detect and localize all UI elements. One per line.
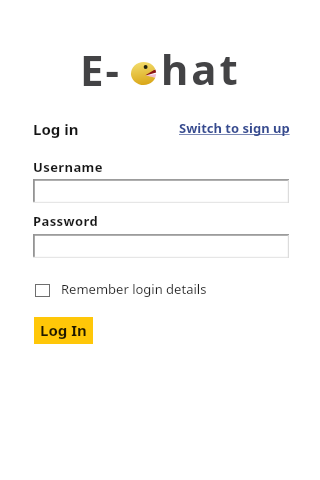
button[interactable]: Log In — [34, 317, 93, 344]
button[interactable]: Switch to sign up — [179, 119, 290, 137]
staticText: Remember login details — [61, 280, 207, 298]
button[interactable]: Password input — [33, 234, 289, 258]
staticText: Log In — [40, 320, 87, 340]
staticText: E- — [80, 41, 121, 98]
other: E-chat logo — [131, 62, 159, 85]
staticText: Password — [33, 212, 99, 230]
button[interactable]: Username input — [33, 179, 289, 203]
staticText: Switch to sign up — [179, 119, 290, 137]
staticText: Username — [33, 158, 103, 176]
button[interactable]: Remember login details — [35, 280, 207, 298]
staticText: hat — [161, 40, 241, 97]
staticText: Log in — [33, 119, 79, 139]
